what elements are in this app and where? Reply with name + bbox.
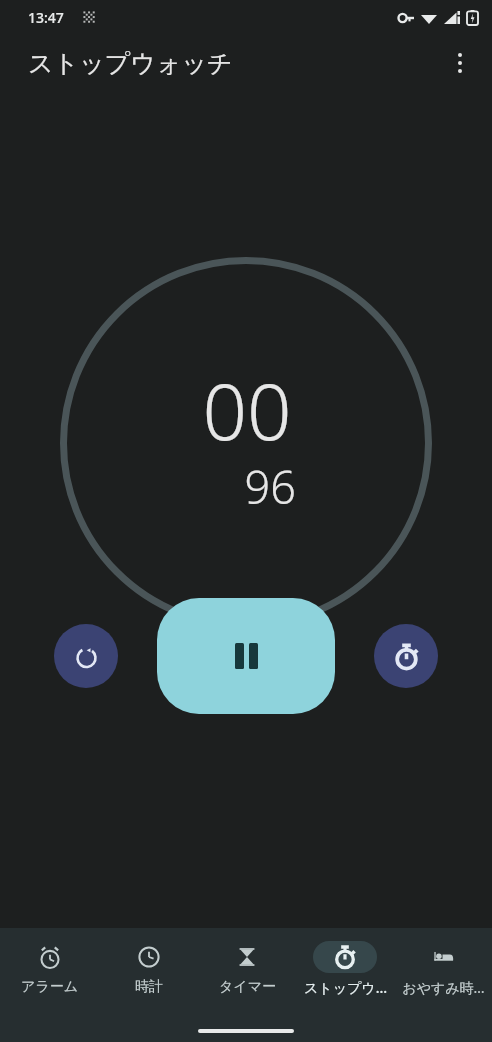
staticText: 96	[244, 456, 296, 517]
button[interactable]: Lap	[374, 624, 438, 688]
button[interactable]: アラーム	[0, 928, 99, 1020]
button[interactable]: Reset	[54, 624, 118, 688]
button[interactable]: おやすみ時…	[394, 928, 492, 1020]
staticText: ストップウ…	[304, 978, 387, 997]
staticText: 00	[202, 357, 292, 463]
staticText: ストップウォッチ	[28, 48, 233, 79]
staticText: アラーム	[21, 978, 78, 996]
button[interactable]: Pause	[157, 598, 335, 714]
button[interactable]: タイマー	[198, 928, 296, 1020]
staticText: おやすみ時…	[402, 978, 485, 997]
button[interactable]: 時計	[99, 928, 198, 1020]
button[interactable]: More options	[438, 41, 482, 85]
staticText: タイマー	[219, 978, 276, 996]
button[interactable]: ストップウ…	[296, 928, 394, 1020]
staticText: 13:47	[28, 8, 64, 27]
staticText: 時計	[135, 978, 163, 996]
